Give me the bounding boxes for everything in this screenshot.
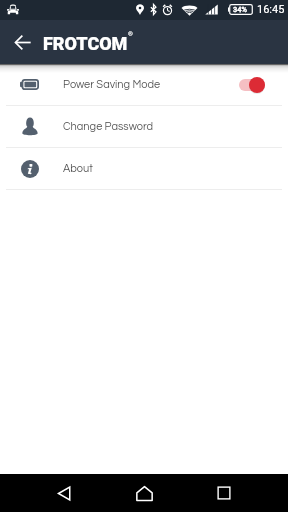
button[interactable]: Navigate up [0, 20, 45, 64]
button[interactable]: About [0, 148, 288, 189]
button[interactable]: Power saving mode toggle [239, 64, 288, 105]
button[interactable]: Power Saving Mode [0, 64, 288, 105]
staticText: FROTCOM [43, 33, 128, 54]
button[interactable]: Back [24, 474, 104, 512]
staticText: 34% [233, 5, 248, 14]
button[interactable]: Recent apps [184, 474, 264, 512]
button[interactable]: Home [104, 474, 184, 512]
staticText: About [63, 163, 93, 174]
staticText: Change Password [63, 121, 154, 132]
button[interactable]: Change Password [0, 106, 288, 147]
staticText: Power Saving Mode [63, 79, 161, 90]
staticText: 16:45 [257, 3, 285, 16]
staticText: ® [128, 30, 133, 37]
